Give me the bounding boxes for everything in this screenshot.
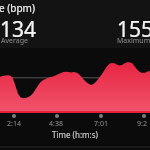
staticText: 9:2 [137,119,147,129]
staticText: Maximum [117,36,150,46]
staticText: 2:14 [7,119,21,129]
staticText: Average [1,36,28,46]
staticText: 155 [117,15,150,44]
staticText: e (bpm) [0,1,35,15]
staticText: 4:38 [49,119,63,129]
staticText: 7:01 [94,119,108,129]
staticText: 134 [0,15,37,44]
staticText: Time (h:m:s) [52,129,98,140]
button[interactable]: Heart rate chart [0,0,150,150]
